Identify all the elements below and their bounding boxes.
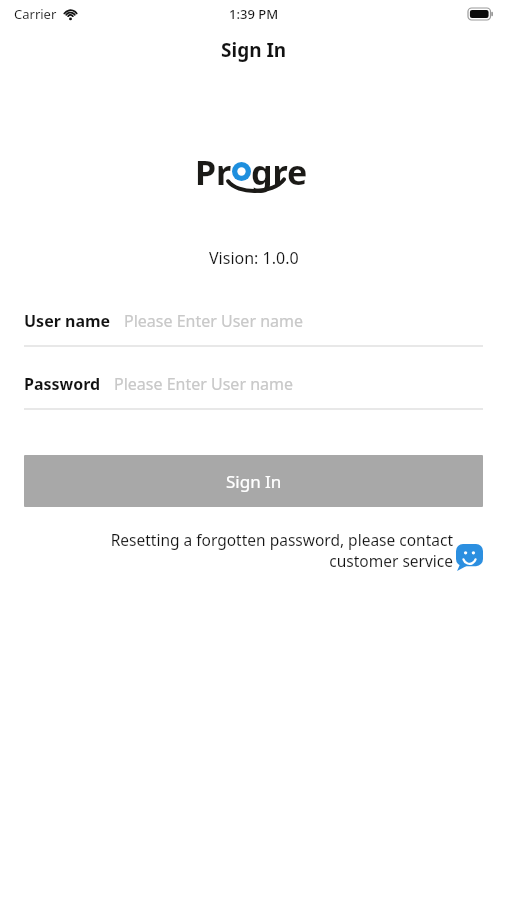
staticText: User name [24,310,111,332]
staticText: Password [24,373,101,395]
button[interactable]: Password [24,373,483,410]
button[interactable]: Sign In [24,455,483,507]
staticText: Resetting a forgotten password, please c… [42,529,453,572]
staticText: Please Enter User name [114,373,294,395]
staticText: Sign In [226,470,282,493]
button[interactable]: User name [24,310,483,347]
staticText: 1:39 PM [229,5,279,23]
other: Contact customer service [456,544,483,571]
staticText: Carrier [14,5,57,23]
staticText: Vision: 1.0.0 [209,247,299,269]
staticText: gre [251,149,308,195]
staticText: Sign In [221,37,287,63]
staticText: Pr [195,149,232,195]
button[interactable]: Resetting a forgotten password, please c… [24,529,483,572]
staticText: Please Enter User name [124,310,304,332]
